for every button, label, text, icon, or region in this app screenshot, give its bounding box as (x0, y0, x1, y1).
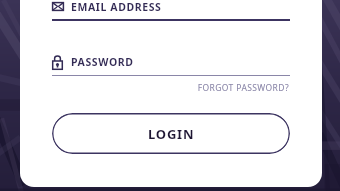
button[interactable]: EMAIL ADDRESS (52, 0, 290, 12)
staticText: FORGOT PASSWORD? (197, 82, 289, 94)
staticText: PASSWORD (71, 55, 134, 69)
button[interactable]: LOGIN (52, 113, 290, 154)
button[interactable]: FORGOT PASSWORD? (196, 81, 290, 95)
staticText: EMAIL ADDRESS (71, 0, 162, 12)
button[interactable]: PASSWORD (52, 53, 290, 71)
staticText: LOGIN (148, 125, 195, 143)
